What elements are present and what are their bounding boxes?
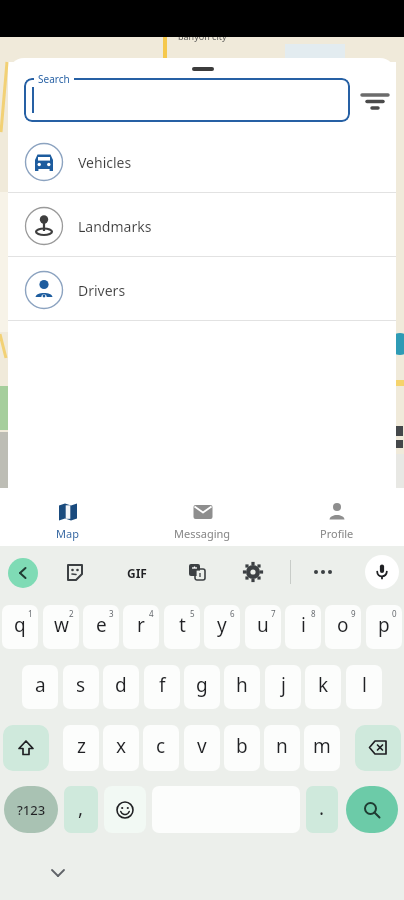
staticText: i bbox=[301, 612, 306, 638]
staticText: t bbox=[179, 612, 186, 638]
button[interactable] bbox=[308, 560, 338, 584]
staticText: z bbox=[77, 733, 86, 759]
staticText: d bbox=[115, 672, 127, 698]
button[interactable]: x bbox=[103, 725, 139, 771]
button[interactable]: Drivers bbox=[8, 258, 396, 322]
staticText: 4 bbox=[149, 608, 154, 619]
staticText: h bbox=[236, 672, 248, 698]
staticText: e bbox=[96, 612, 107, 638]
staticText: p bbox=[378, 612, 390, 638]
button[interactable]: d bbox=[103, 665, 139, 709]
button[interactable]: l bbox=[346, 665, 382, 709]
button[interactable]: j bbox=[265, 665, 301, 709]
staticText: l bbox=[362, 672, 367, 698]
button[interactable]: , bbox=[64, 786, 98, 833]
button[interactable] bbox=[365, 555, 399, 589]
button[interactable]: b bbox=[224, 725, 260, 771]
staticText: Drivers bbox=[78, 281, 126, 300]
button[interactable]: r bbox=[123, 605, 159, 649]
button[interactable]: z bbox=[63, 725, 99, 771]
staticText: . bbox=[319, 795, 325, 821]
button[interactable] bbox=[8, 558, 38, 588]
button[interactable]: y bbox=[204, 605, 240, 649]
staticText: Map bbox=[56, 526, 79, 541]
staticText: , bbox=[78, 795, 84, 821]
staticText: 3 bbox=[109, 608, 114, 619]
button[interactable]: GIF bbox=[120, 558, 154, 588]
staticText: k bbox=[318, 672, 329, 698]
staticText: banyon city bbox=[178, 30, 227, 42]
staticText: 7 bbox=[271, 608, 276, 619]
button[interactable]: g bbox=[184, 665, 220, 709]
staticText: o bbox=[337, 612, 349, 638]
staticText: s bbox=[76, 672, 86, 698]
staticText: Profile bbox=[320, 526, 354, 541]
staticText: 0 bbox=[392, 608, 397, 619]
button[interactable]: m bbox=[304, 725, 340, 771]
staticText: f bbox=[159, 672, 166, 698]
staticText: GIF bbox=[127, 565, 147, 581]
staticText: v bbox=[197, 733, 207, 759]
button[interactable]: e bbox=[83, 605, 119, 649]
staticText: Messaging bbox=[174, 526, 231, 541]
button[interactable]: c bbox=[143, 725, 179, 771]
button[interactable] bbox=[104, 786, 146, 833]
button[interactable]: Messaging bbox=[135, 488, 270, 546]
button[interactable]: h bbox=[224, 665, 260, 709]
staticText: 1 bbox=[28, 608, 33, 619]
staticText: y bbox=[217, 612, 227, 638]
staticText: q bbox=[14, 612, 26, 638]
button[interactable]: k bbox=[305, 665, 341, 709]
staticText: j bbox=[281, 672, 286, 698]
staticText: a bbox=[35, 672, 46, 698]
button[interactable]: w bbox=[43, 605, 79, 649]
button[interactable] bbox=[360, 86, 390, 116]
staticText: x bbox=[116, 733, 127, 759]
button[interactable]: o bbox=[325, 605, 361, 649]
button[interactable]: t bbox=[164, 605, 200, 649]
staticText: w bbox=[54, 612, 69, 638]
staticText: m bbox=[313, 733, 331, 759]
staticText: g bbox=[196, 672, 208, 698]
button[interactable]: n bbox=[264, 725, 300, 771]
button[interactable]: p bbox=[366, 605, 402, 649]
button[interactable]: v bbox=[184, 725, 220, 771]
staticText: Vehicles bbox=[78, 153, 132, 172]
staticText: 6 bbox=[230, 608, 235, 619]
button[interactable] bbox=[24, 78, 350, 122]
button[interactable] bbox=[63, 561, 87, 585]
button[interactable] bbox=[241, 560, 265, 584]
button[interactable]: Profile bbox=[269, 488, 404, 546]
button[interactable] bbox=[185, 560, 209, 584]
button[interactable] bbox=[355, 725, 401, 771]
button[interactable]: f bbox=[144, 665, 180, 709]
button[interactable]: . bbox=[306, 786, 338, 833]
button[interactable]: ?123 bbox=[4, 786, 58, 833]
button[interactable]: u bbox=[245, 605, 281, 649]
button[interactable]: Landmarks bbox=[8, 194, 396, 258]
staticText: 2 bbox=[69, 608, 74, 619]
staticText: 5 bbox=[190, 608, 195, 619]
staticText: r bbox=[137, 612, 145, 638]
button[interactable]: a bbox=[22, 665, 58, 709]
staticText: b bbox=[236, 733, 248, 759]
button[interactable]: Map bbox=[0, 488, 135, 546]
button[interactable] bbox=[346, 786, 398, 833]
staticText: u bbox=[257, 612, 269, 638]
button[interactable]: Vehicles bbox=[8, 130, 396, 194]
staticText: 9 bbox=[351, 608, 356, 619]
button[interactable] bbox=[3, 725, 49, 771]
staticText: Search bbox=[38, 72, 70, 86]
staticText: 8 bbox=[311, 608, 316, 619]
button[interactable]: s bbox=[63, 665, 99, 709]
staticText: Landmarks bbox=[78, 217, 152, 236]
staticText: n bbox=[276, 733, 288, 759]
button[interactable]: q bbox=[2, 605, 38, 649]
staticText: c bbox=[156, 733, 166, 759]
button[interactable]: i bbox=[285, 605, 321, 649]
staticText: ?123 bbox=[17, 801, 46, 819]
